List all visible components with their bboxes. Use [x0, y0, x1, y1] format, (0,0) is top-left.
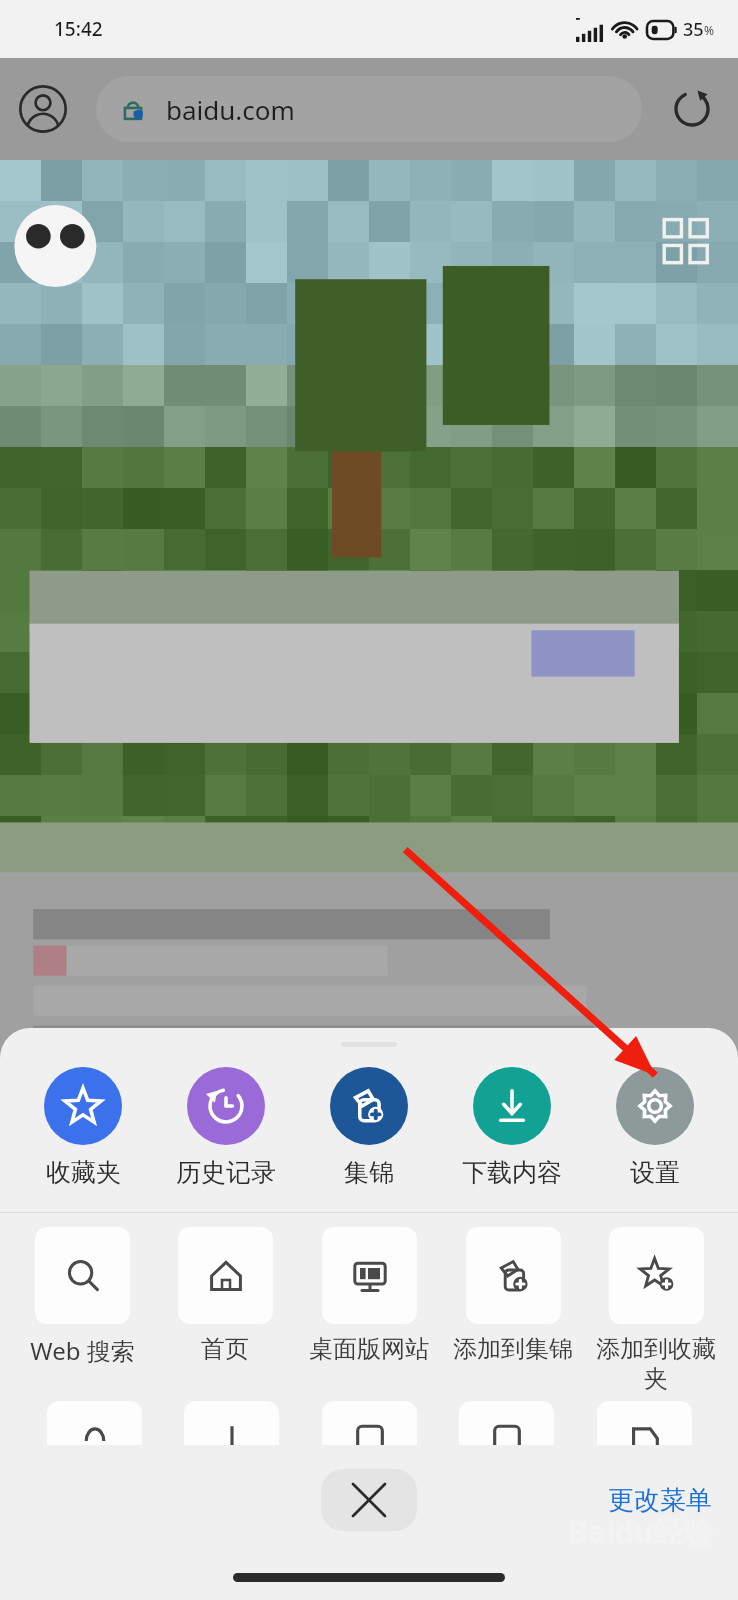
button[interactable]: 集锦	[303, 1065, 435, 1190]
staticText: %	[704, 22, 714, 38]
staticText: 首页	[201, 1334, 249, 1364]
staticText: 历史记录	[176, 1157, 276, 1188]
button[interactable]: Reload	[662, 79, 722, 139]
staticText: 设置	[630, 1157, 680, 1188]
staticText: 35	[683, 17, 704, 42]
button[interactable]	[597, 1401, 692, 1445]
staticText: Baidu经验	[568, 1511, 714, 1552]
staticText: 下载内容	[462, 1157, 562, 1188]
staticText: 添加到集锦	[453, 1334, 573, 1364]
button[interactable]: 下载内容	[446, 1065, 578, 1190]
button[interactable]: 设置	[589, 1065, 721, 1190]
staticText: 更改菜单	[608, 1484, 712, 1517]
button[interactable]: 首页	[159, 1227, 291, 1364]
button[interactable]	[184, 1401, 279, 1445]
button[interactable]: 历史记录	[160, 1065, 292, 1190]
button[interactable]: Web 搜索	[16, 1227, 148, 1367]
button[interactable]: Profile	[12, 78, 74, 140]
staticText: 添加到收藏 夹	[596, 1334, 716, 1395]
button[interactable]: 桌面版网站	[303, 1227, 435, 1364]
button[interactable]	[459, 1401, 554, 1445]
button[interactable]: Close	[321, 1469, 417, 1531]
button[interactable]: 添加到集锦	[447, 1227, 579, 1364]
staticText: baidu.com	[166, 92, 295, 127]
button[interactable]: 添加到收藏 夹	[590, 1227, 722, 1395]
staticText: 收藏夹	[46, 1157, 121, 1188]
staticText: 集锦	[344, 1157, 394, 1188]
button[interactable]: 收藏夹	[17, 1065, 149, 1190]
button[interactable]: 更改菜单	[602, 1478, 718, 1523]
button[interactable]	[322, 1401, 417, 1445]
staticText: 15:42	[54, 16, 103, 42]
staticText: 桌面版网站	[309, 1334, 429, 1364]
button[interactable]	[47, 1401, 142, 1445]
staticText: Web 搜索	[30, 1334, 135, 1367]
button[interactable]: baidu.com	[96, 76, 642, 142]
